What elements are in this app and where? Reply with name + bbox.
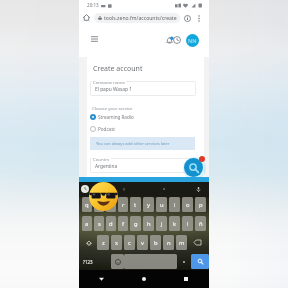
staticText: Choose your service — [92, 105, 133, 111]
button[interactable]: r — [118, 197, 128, 212]
staticText: r — [122, 201, 125, 209]
button[interactable]: d — [106, 216, 116, 231]
button[interactable]: x — [111, 235, 122, 250]
staticText: u — [160, 201, 164, 209]
button[interactable]: o — [182, 197, 193, 212]
button[interactable]: b — [150, 235, 161, 250]
button[interactable]: g — [130, 216, 141, 231]
button[interactable]: El papu Wasap 1 — [90, 81, 196, 96]
button[interactable]: Backspace — [188, 235, 207, 250]
staticText: s — [98, 220, 101, 228]
button[interactable]: History — [171, 34, 183, 46]
staticText: p — [199, 201, 203, 209]
button[interactable]: Argentina — [90, 158, 196, 173]
button[interactable]: k — [169, 216, 180, 231]
staticText: tools.zeno.fm/accounts/create — [104, 15, 177, 22]
button[interactable]: e — [106, 197, 116, 212]
staticText: q — [85, 201, 89, 209]
staticText: k — [173, 220, 177, 228]
button[interactable]: z — [97, 235, 109, 250]
button[interactable]: Emoji keyboard — [111, 254, 124, 269]
staticText: o — [186, 201, 190, 209]
staticText: i — [174, 201, 176, 209]
staticText: g — [134, 220, 138, 228]
staticText: v — [141, 239, 144, 247]
button[interactable]: w — [94, 197, 104, 212]
staticText: j — [161, 220, 163, 228]
staticText: You can always add other services later — [96, 141, 170, 146]
staticText: x — [115, 239, 119, 247]
staticText: ñ — [199, 220, 203, 228]
button[interactable]: p — [195, 197, 206, 212]
staticText: b — [154, 239, 158, 247]
button[interactable]: f — [118, 216, 128, 231]
staticText: Create account — [93, 64, 143, 74]
staticText: Streaming Radio — [98, 114, 134, 120]
button[interactable]: Home — [81, 12, 92, 23]
staticText: z — [102, 239, 105, 247]
button[interactable]: tools.zeno.fm/accounts/create — [94, 13, 180, 23]
staticText: n — [167, 239, 171, 247]
staticText: t — [134, 201, 137, 209]
button[interactable]: NN — [186, 34, 199, 47]
button[interactable]: c — [124, 235, 135, 250]
button[interactable]: v — [137, 235, 148, 250]
button[interactable]: Space — [124, 254, 177, 269]
button[interactable]: s — [94, 216, 104, 231]
staticText: a — [85, 220, 89, 228]
staticText: f — [122, 220, 124, 228]
button[interactable]: Home — [138, 273, 150, 285]
staticText: Country — [93, 156, 110, 161]
button[interactable]: y — [143, 197, 154, 212]
staticText: El papu Wasap 1 — [95, 86, 132, 93]
staticText: Argentina — [95, 163, 118, 170]
button[interactable]: ñ — [195, 216, 206, 231]
button[interactable]: l — [182, 216, 193, 231]
staticText: a — [163, 186, 166, 192]
button[interactable]: Recent apps — [180, 273, 192, 285]
staticText: 20:13 — [87, 2, 99, 8]
button[interactable]: Back — [95, 273, 107, 285]
button[interactable]: Search — [184, 158, 203, 177]
button[interactable]: m — [176, 235, 187, 250]
button[interactable]: h — [143, 216, 154, 231]
button[interactable]: Podcast — [90, 125, 116, 133]
button[interactable]: Period — [178, 254, 189, 269]
button[interactable]: Notifications — [163, 34, 175, 46]
staticText: w — [97, 201, 102, 209]
staticText: l — [187, 220, 189, 228]
button[interactable]: u — [156, 197, 167, 212]
button[interactable]: a — [82, 216, 92, 231]
button[interactable]: j — [156, 216, 167, 231]
staticText: y — [123, 186, 126, 192]
button[interactable]: Page info — [182, 13, 192, 23]
button[interactable]: i — [169, 197, 180, 212]
button[interactable]: ?123 — [81, 254, 94, 269]
button[interactable]: q — [82, 197, 92, 212]
button[interactable]: n — [163, 235, 174, 250]
staticText: Company name — [93, 79, 125, 84]
button[interactable]: Search — [191, 254, 209, 269]
button[interactable]: Menu — [88, 32, 101, 45]
staticText: h — [147, 220, 151, 228]
button[interactable]: Streaming Radio — [90, 113, 134, 121]
staticText: NN — [188, 37, 197, 45]
staticText: y — [147, 201, 150, 209]
staticText: c — [128, 239, 131, 247]
staticText: m — [179, 239, 185, 247]
button[interactable]: Shift — [81, 235, 96, 250]
button[interactable]: More options — [194, 13, 204, 23]
staticText: d — [109, 220, 113, 228]
staticText: e — [109, 201, 113, 209]
staticText: Podcast — [98, 126, 116, 132]
button[interactable]: t — [130, 197, 141, 212]
staticText: ?123 — [83, 259, 93, 265]
